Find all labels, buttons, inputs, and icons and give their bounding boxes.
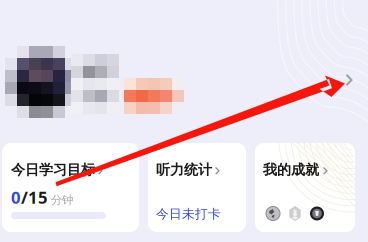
staticText: 0 [11, 186, 21, 209]
button[interactable]: 今日学习目标 [2, 143, 139, 232]
staticText: 今日学习目标 [11, 161, 95, 179]
button[interactable]: Profile details [337, 66, 361, 94]
staticText: /15 [21, 186, 48, 209]
staticText: 听力统计 [156, 161, 212, 179]
staticText: 我的成就 [263, 161, 319, 179]
staticText: 分钟 [51, 193, 73, 207]
staticText: 今日未打卡 [156, 206, 221, 222]
button[interactable]: 我的成就 [255, 143, 355, 232]
button[interactable]: 听力统计 [148, 143, 246, 232]
